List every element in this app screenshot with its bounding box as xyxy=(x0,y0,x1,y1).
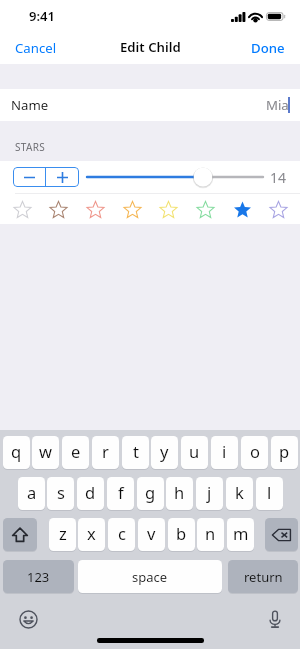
staticText: 123 xyxy=(27,568,50,586)
button[interactable]: Star 4 xyxy=(117,194,147,224)
button[interactable]: space xyxy=(78,560,222,593)
button[interactable]: Star 6 xyxy=(190,194,220,224)
button[interactable]: a xyxy=(18,477,45,510)
staticText: z xyxy=(59,522,67,544)
button[interactable]: return xyxy=(228,560,298,593)
button[interactable]: Star 7 xyxy=(227,194,257,224)
button[interactable]: Increase stars xyxy=(46,167,79,187)
staticText: x xyxy=(87,522,96,544)
button[interactable]: j xyxy=(196,477,223,510)
staticText: b xyxy=(176,522,187,544)
button[interactable]: r xyxy=(92,436,119,469)
staticText: a xyxy=(27,481,37,503)
button[interactable]: p xyxy=(271,436,298,469)
button[interactable]: d xyxy=(77,477,104,510)
staticText: Done xyxy=(251,39,285,55)
button[interactable]: b xyxy=(168,518,195,551)
button[interactable]: e xyxy=(62,436,89,469)
button[interactable]: Star 1 xyxy=(7,194,37,224)
button[interactable]: Star 5 xyxy=(153,194,183,224)
staticText: t xyxy=(133,440,139,462)
button[interactable]: k xyxy=(226,477,253,510)
staticText: e xyxy=(71,440,81,462)
button[interactable]: 123 xyxy=(3,560,74,593)
staticText: h xyxy=(174,481,185,503)
staticText: l xyxy=(267,481,272,503)
staticText: g xyxy=(145,481,156,503)
button[interactable]: y xyxy=(151,436,178,469)
button[interactable]: Star 8 xyxy=(263,194,293,224)
button[interactable]: s xyxy=(47,477,74,510)
staticText: n xyxy=(205,522,216,544)
button[interactable]: Star 2 xyxy=(43,194,73,224)
staticText: y xyxy=(160,440,169,462)
staticText: u xyxy=(189,440,200,462)
staticText: i xyxy=(222,440,227,462)
button[interactable]: Star 3 xyxy=(80,194,110,224)
staticText: p xyxy=(279,440,290,462)
button[interactable]: Decrease stars xyxy=(13,167,45,187)
button[interactable]: t xyxy=(122,436,149,469)
button[interactable]: z xyxy=(49,518,76,551)
staticText: Name xyxy=(11,96,49,114)
button[interactable]: Emoji keyboard xyxy=(16,607,40,631)
button[interactable]: u xyxy=(181,436,208,469)
button[interactable]: f xyxy=(107,477,134,510)
button[interactable]: Shift xyxy=(3,518,37,551)
button[interactable]: x xyxy=(78,518,105,551)
button[interactable]: v xyxy=(138,518,165,551)
button[interactable]: Backspace xyxy=(265,518,298,551)
staticText: Mia xyxy=(266,96,289,114)
button[interactable]: Dictation xyxy=(263,607,287,631)
staticText: f xyxy=(118,481,124,503)
staticText: k xyxy=(235,481,244,503)
staticText: d xyxy=(85,481,96,503)
button[interactable]: c xyxy=(108,518,135,551)
staticText: v xyxy=(147,522,156,544)
staticText: r xyxy=(102,440,109,462)
staticText: q xyxy=(11,440,22,462)
staticText: o xyxy=(250,440,260,462)
staticText: space xyxy=(132,568,168,586)
button[interactable]: h xyxy=(166,477,193,510)
staticText: Cancel xyxy=(15,39,57,55)
staticText: return xyxy=(244,568,283,586)
staticText: Edit Child xyxy=(120,38,181,56)
button[interactable]: w xyxy=(32,436,59,469)
button[interactable]: l xyxy=(256,477,283,510)
button[interactable]: n xyxy=(197,518,224,551)
staticText: 14 xyxy=(270,168,287,187)
staticText: s xyxy=(57,481,65,503)
button[interactable]: o xyxy=(241,436,268,469)
staticText: STARS xyxy=(15,140,45,154)
button[interactable]: Cancel xyxy=(0,31,72,63)
button[interactable]: i xyxy=(211,436,238,469)
staticText: w xyxy=(39,440,52,462)
button[interactable]: m xyxy=(227,518,254,551)
button[interactable]: Name xyxy=(0,89,300,121)
staticText: 9:41 xyxy=(29,7,55,25)
button[interactable]: q xyxy=(3,436,30,469)
button[interactable]: Done xyxy=(236,31,300,63)
staticText: j xyxy=(207,481,212,503)
staticText: c xyxy=(118,522,126,544)
staticText: m xyxy=(233,522,249,544)
button[interactable]: g xyxy=(137,477,164,510)
button[interactable]: Stars slider xyxy=(85,161,265,193)
